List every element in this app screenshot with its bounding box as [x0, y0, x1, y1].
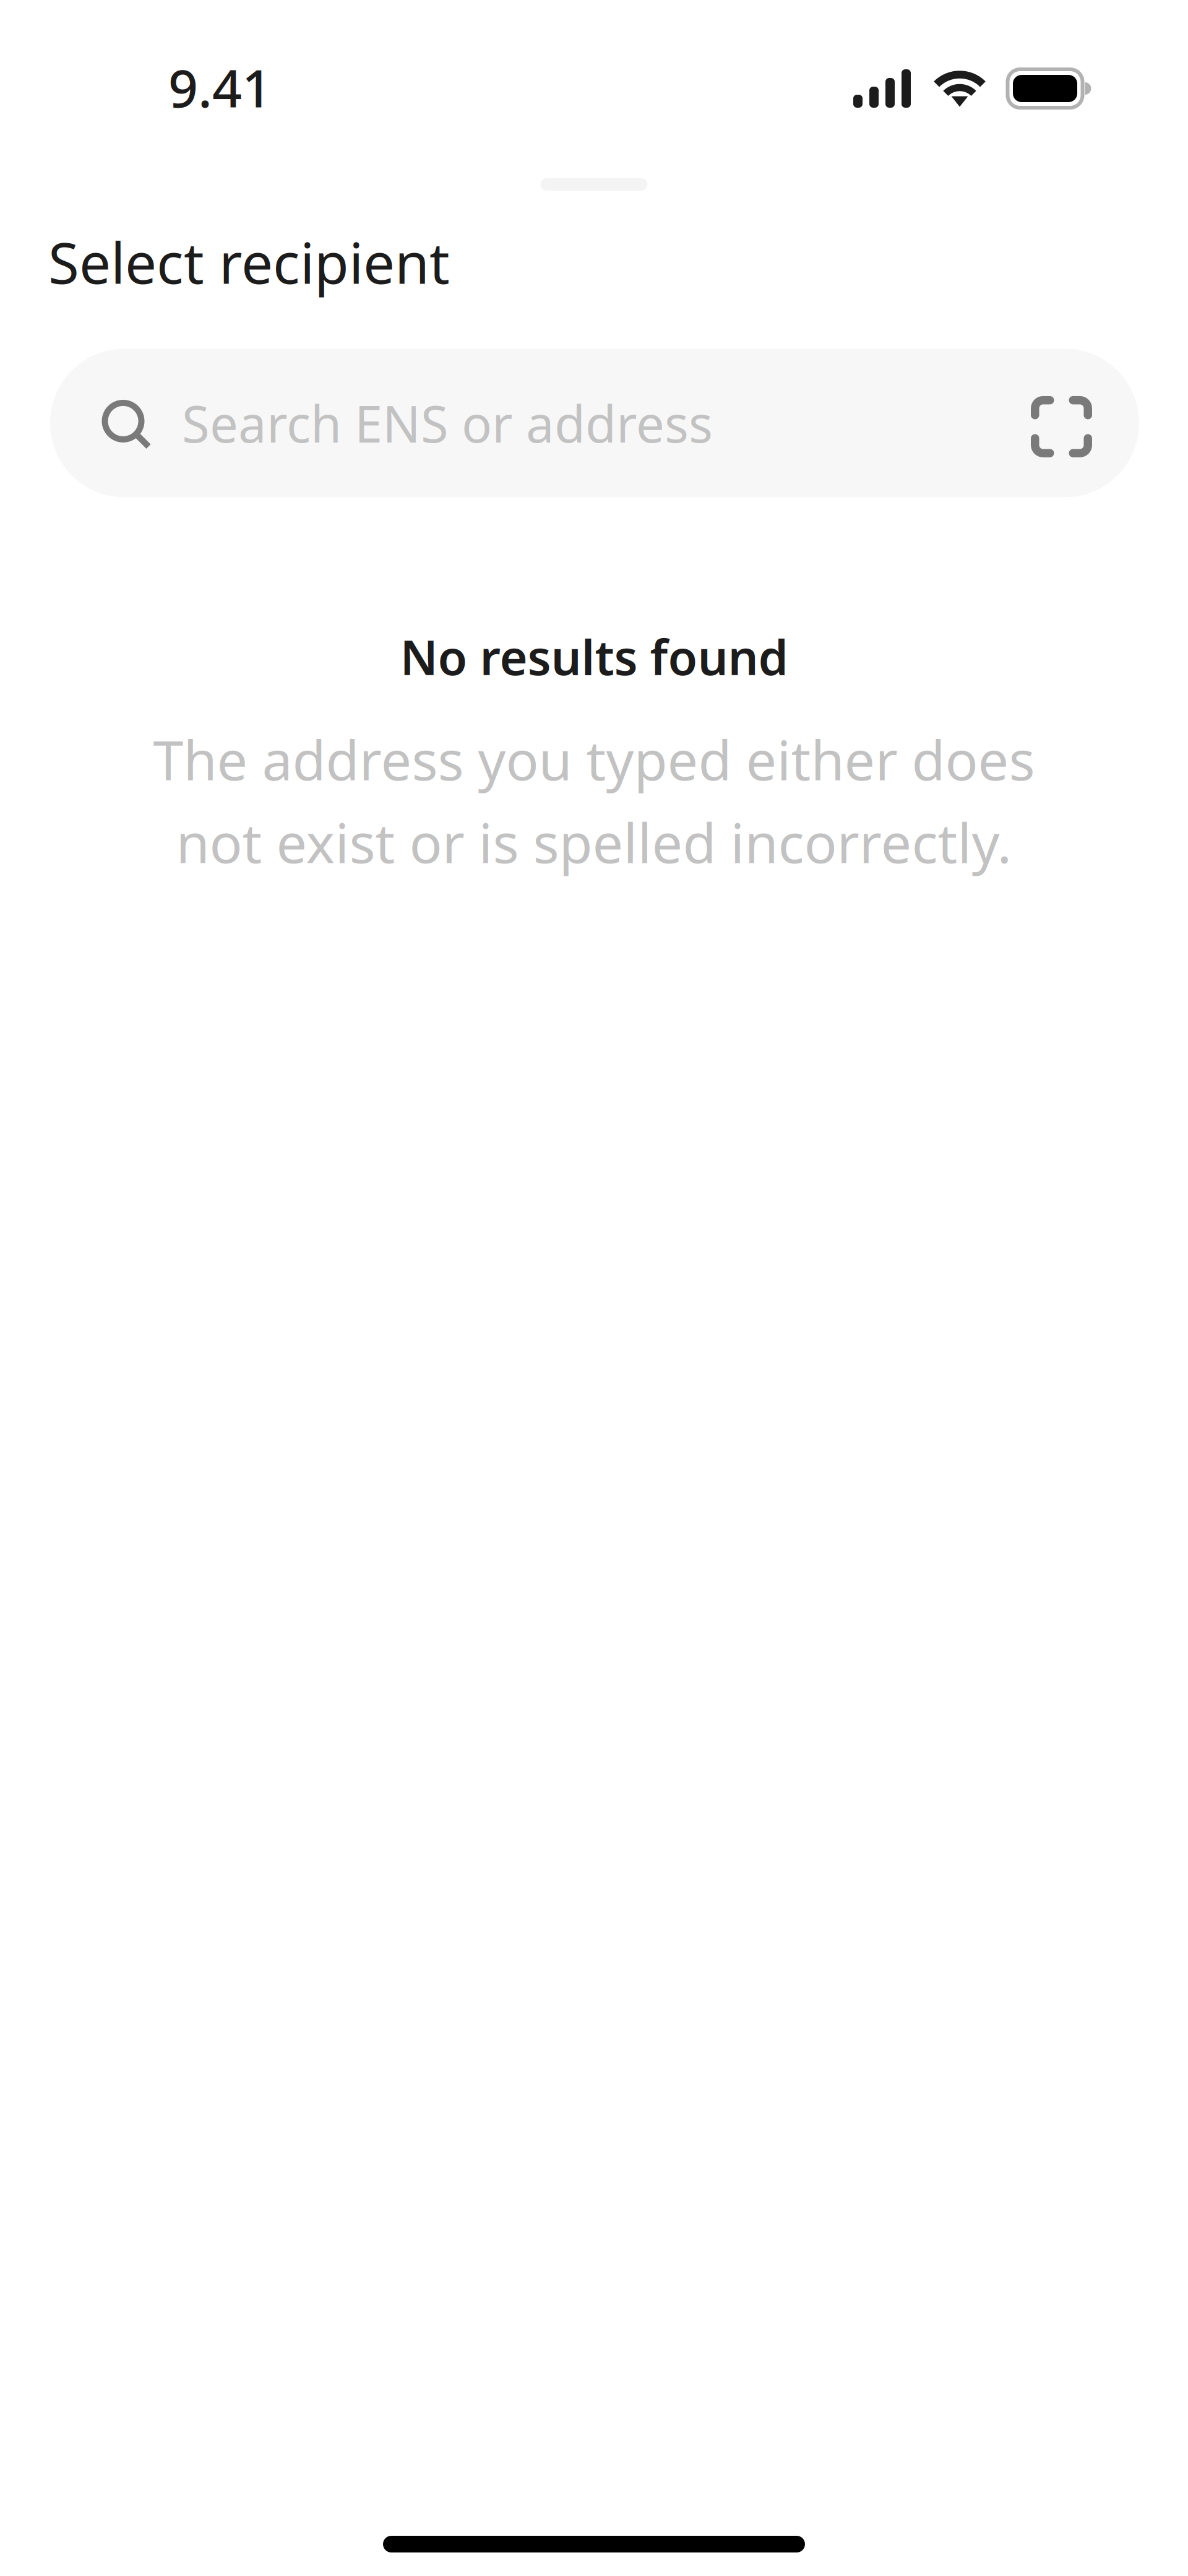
staticText: 9.41: [168, 53, 272, 122]
staticText: The address you typed either does: [153, 723, 1035, 795]
staticText: not exist or is spelled incorrectly.: [176, 806, 1012, 878]
staticText: No results found: [400, 625, 788, 688]
button[interactable]: Scan QR code: [1031, 389, 1092, 457]
button[interactable]: Search ENS or address: [50, 349, 1139, 497]
staticText: Search ENS or address: [182, 390, 713, 456]
staticText: Select recipient: [48, 225, 450, 299]
